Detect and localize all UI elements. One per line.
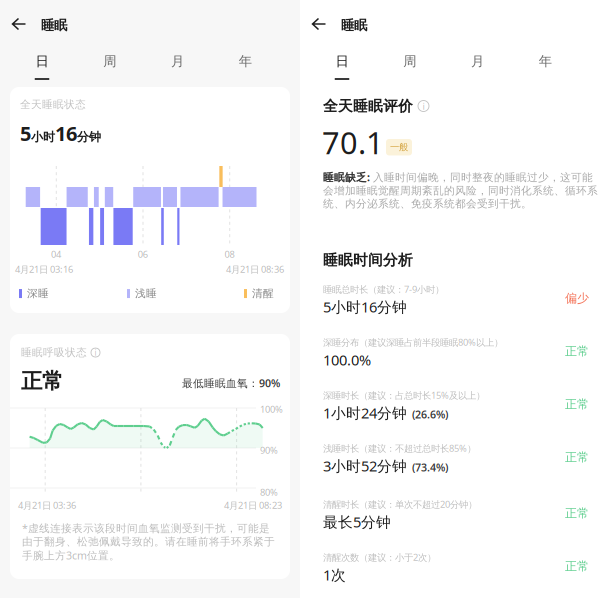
staticText: 正常 <box>565 344 589 359</box>
staticText: 正常 <box>565 397 589 412</box>
staticText: 睡眠 <box>41 17 67 33</box>
staticText: 睡眠呼吸状态 <box>21 346 87 359</box>
staticText: 5小时16分钟 <box>323 297 407 316</box>
button[interactable]: 年 <box>215 50 275 86</box>
staticText: 04 <box>51 248 61 260</box>
staticText: 睡眠总时长（建议：7-9小时） <box>323 283 444 295</box>
staticText: 90% <box>260 444 278 456</box>
staticText: 清醒时长（建议：单次不超过20分钟） <box>323 498 477 510</box>
staticText: i <box>94 347 96 358</box>
button[interactable]: 日 <box>312 50 372 86</box>
staticText: 16 <box>55 120 77 147</box>
staticText: 100% <box>260 403 283 415</box>
staticText: 3小时52分钟 <box>323 456 407 475</box>
button[interactable]: Back <box>305 10 333 38</box>
button[interactable]: 月 <box>447 50 507 86</box>
staticText: 清醒 <box>252 287 274 300</box>
staticText: 4月21日 08:23 <box>224 499 282 511</box>
button[interactable]: 年 <box>515 50 575 86</box>
staticText: 年 <box>539 53 552 69</box>
button[interactable]: Back <box>5 10 33 38</box>
button[interactable]: 周 <box>80 50 140 86</box>
staticText: 正常 <box>565 506 589 521</box>
staticText: 睡眠时间分析 <box>323 251 413 269</box>
staticText: 浅睡时长（建议：不超过总时长85%） <box>323 442 476 454</box>
staticText: 100.0% <box>323 350 371 369</box>
staticText: 最长5分钟 <box>323 512 391 531</box>
staticText: 年 <box>239 53 252 69</box>
staticText: 1次 <box>323 565 346 584</box>
staticText: 深睡分布（建议深睡占前半段睡眠80%以上） <box>323 336 503 348</box>
staticText: 正常 <box>21 368 63 394</box>
button[interactable]: 日 <box>12 50 72 86</box>
staticText: 1小时24分钟 <box>323 403 407 422</box>
staticText: 浅睡 <box>135 287 157 300</box>
staticText: 4月21日 08:36 <box>226 263 284 275</box>
staticText: 分钟 <box>77 130 101 144</box>
staticText: 日 <box>35 53 48 69</box>
staticText: 80% <box>260 486 278 498</box>
staticText: 正常 <box>565 559 589 574</box>
staticText: 月 <box>171 53 184 69</box>
button[interactable]: 周 <box>380 50 440 86</box>
staticText: *虚线连接表示该段时间血氧监测受到干扰，可能是由于翻身、松弛佩戴导致的。请在睡前… <box>22 521 275 562</box>
staticText: 周 <box>403 53 416 69</box>
staticText: i <box>422 100 424 112</box>
staticText: 70.1 <box>322 122 384 163</box>
button[interactable]: 月 <box>147 50 207 86</box>
staticText: 周 <box>103 53 116 69</box>
staticText: 06 <box>138 248 148 260</box>
staticText: 偏少 <box>565 291 589 306</box>
staticText: 全天睡眠评价 <box>323 97 413 115</box>
staticText: 最低睡眠血氧：90% <box>182 376 280 390</box>
staticText: 日 <box>335 53 348 69</box>
staticText: 清醒次数（建议：小于2次） <box>323 551 436 563</box>
staticText: 4月21日 03:16 <box>15 263 73 275</box>
staticText: 深睡 <box>27 287 49 300</box>
staticText: 月 <box>471 53 484 69</box>
staticText: 全天睡眠状态 <box>20 98 86 111</box>
staticText: 5 <box>20 120 31 147</box>
staticText: 睡眠 <box>341 17 367 33</box>
staticText: (73.4%) <box>412 460 448 474</box>
staticText: (26.6%) <box>412 407 448 421</box>
staticText: 4月21日 03:36 <box>18 499 76 511</box>
staticText: 小时 <box>31 130 55 144</box>
staticText: 深睡时长（建议：占总时长15%及以上） <box>323 389 485 401</box>
staticText: 08 <box>224 248 234 260</box>
staticText: 睡眠缺乏: <box>323 170 370 184</box>
staticText: 睡眠缺乏: 入睡时间偏晚，同时整夜的睡眠过少，这可能会增加睡眠觉醒周期紊乱的风险… <box>323 170 598 210</box>
staticText: 正常 <box>565 450 589 465</box>
staticText: 一般 <box>390 141 408 153</box>
